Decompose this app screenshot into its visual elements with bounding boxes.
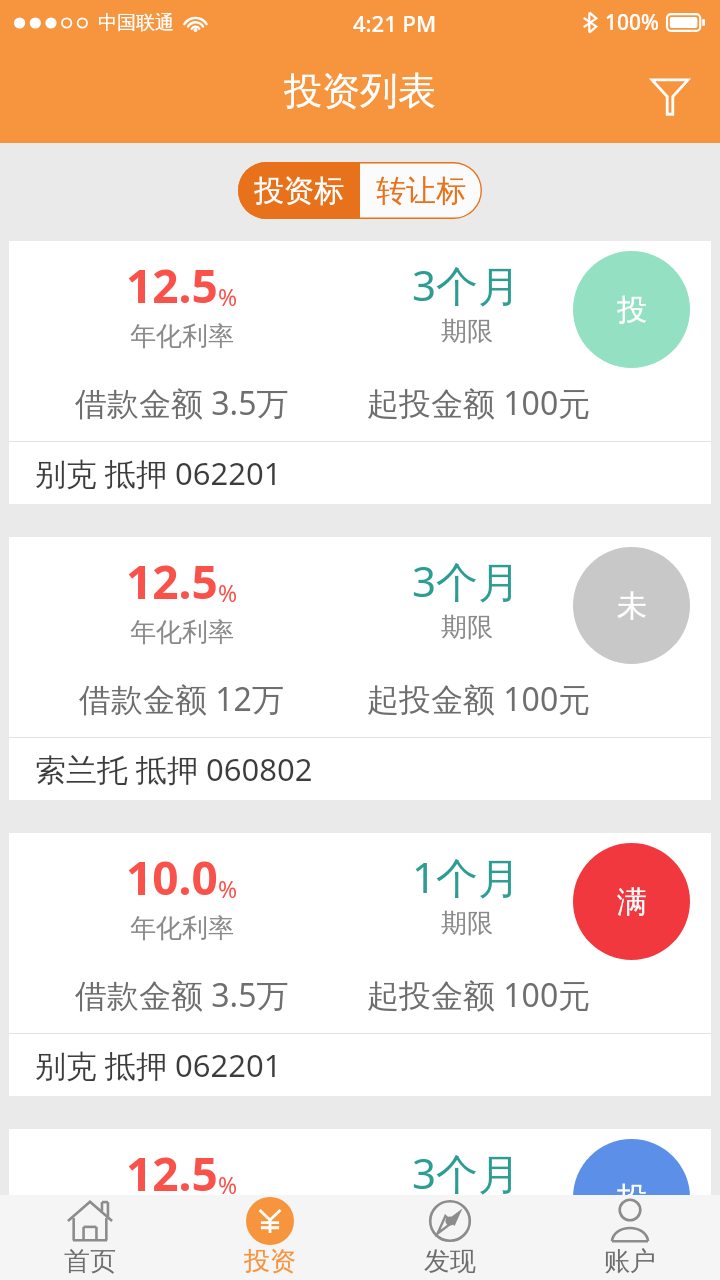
staticText: 投资列表 — [284, 67, 436, 115]
staticText: 转让标 — [376, 172, 466, 210]
staticText: 年化利率 — [130, 912, 234, 945]
staticText: 投 — [617, 1179, 647, 1217]
staticText: 12.5 — [126, 1142, 218, 1205]
button[interactable]: 首页 — [0, 1195, 180, 1280]
button[interactable]: 账户 — [540, 1195, 720, 1280]
staticText: 12.5 — [126, 550, 218, 613]
staticText: 投资 — [244, 1245, 296, 1278]
staticText: 借款金额 3.5万 — [75, 973, 289, 1017]
staticText: 期限 — [441, 1203, 493, 1236]
button[interactable]: 12.5 — [9, 537, 711, 800]
staticText: 投 — [617, 291, 647, 329]
button[interactable]: 投资标 — [238, 162, 360, 219]
staticText: % — [218, 1169, 238, 1200]
button[interactable]: 12.5 — [9, 241, 711, 504]
staticText: 4:21 PM — [353, 8, 437, 38]
button[interactable]: 12.5 — [9, 1129, 711, 1280]
staticText: 起投金额 100元 — [367, 973, 591, 1017]
staticText: % — [218, 281, 238, 312]
staticText: 借款金额 3.5万 — [75, 381, 289, 425]
staticText: 借款金额 12万 — [79, 677, 284, 721]
button[interactable]: 发现 — [360, 1195, 540, 1280]
staticText: 首页 — [64, 1245, 116, 1278]
staticText: 投资标 — [254, 172, 344, 210]
staticText: 年化利率 — [130, 320, 234, 353]
staticText: 中国联通 — [98, 11, 174, 35]
staticText: 别克 抵押 062201 — [35, 1044, 282, 1086]
staticText: 满 — [617, 883, 647, 921]
button[interactable]: 10.0 — [9, 833, 711, 1096]
staticText: 3个月 — [412, 552, 521, 609]
staticText: 索兰托 抵押 060802 — [35, 748, 313, 790]
staticText: 账户 — [604, 1245, 656, 1278]
staticText: 未 — [617, 587, 647, 625]
staticText: 1个月 — [412, 848, 521, 905]
button[interactable]: 转让标 — [360, 162, 482, 219]
staticText: % — [218, 577, 238, 608]
staticText: 别克 抵押 062201 — [35, 452, 282, 494]
staticText: 100% — [605, 8, 659, 37]
staticText: 3个月 — [412, 256, 521, 313]
staticText: 10.0 — [126, 846, 218, 909]
staticText: 期限 — [441, 315, 493, 348]
button[interactable]: Filter — [640, 64, 700, 124]
staticText: 12.5 — [126, 254, 218, 317]
staticText: 3个月 — [412, 1144, 521, 1201]
staticText: 期限 — [441, 907, 493, 940]
staticText: 起投金额 100元 — [367, 1253, 591, 1280]
staticText: 起投金额 100元 — [367, 677, 591, 721]
staticText: 借款金额 5万 — [88, 1253, 275, 1280]
staticText: % — [218, 873, 238, 904]
other: 投资 — [246, 1197, 294, 1245]
staticText: 起投金额 100元 — [367, 381, 591, 425]
button[interactable]: 投资 — [180, 1195, 360, 1280]
staticText: 年化利率 — [130, 616, 234, 649]
staticText: 期限 — [441, 611, 493, 644]
staticText: 发现 — [424, 1245, 476, 1278]
